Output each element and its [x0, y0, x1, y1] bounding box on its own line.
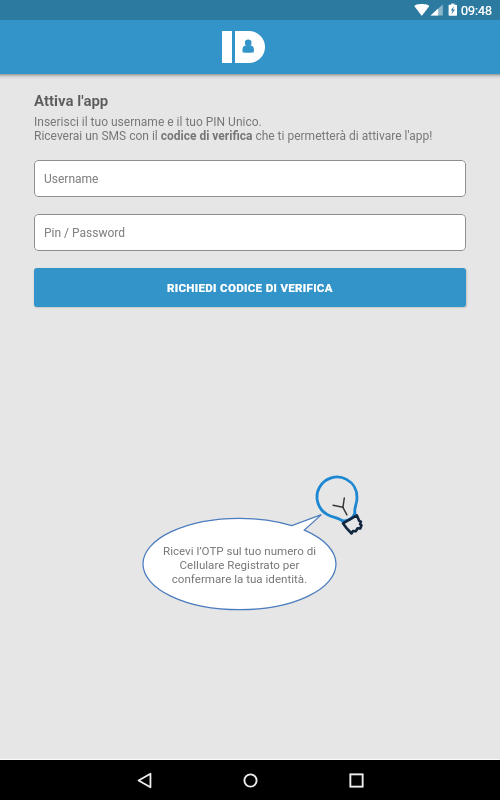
- staticText: 09:48: [461, 3, 493, 18]
- staticText: Ricevi l’OTP sul tuo numero di Cellulare…: [163, 544, 316, 586]
- button[interactable]: RICHIEDI CODICE DI VERIFICA: [34, 268, 466, 307]
- button[interactable]: Pin / Password: [34, 214, 466, 251]
- staticText: RICHIEDI CODICE DI VERIFICA: [167, 281, 333, 294]
- staticText: Username: [44, 172, 99, 186]
- button[interactable]: Back: [124, 760, 164, 800]
- staticText: Attiva l'app: [34, 92, 109, 110]
- button[interactable]: Username: [34, 160, 466, 197]
- staticText: Pin / Password: [44, 226, 126, 240]
- staticText: Inserisci il tuo username e il tuo PIN U…: [34, 115, 433, 143]
- button[interactable]: Recents: [336, 760, 376, 800]
- button[interactable]: Home: [230, 760, 270, 800]
